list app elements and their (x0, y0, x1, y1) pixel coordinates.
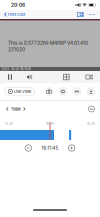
staticText: 16:30 (87, 122, 95, 126)
button[interactable]: Record (83, 71, 95, 83)
button[interactable]: Layout (61, 71, 72, 83)
staticText: ∞ (89, 106, 93, 112)
staticText: 20:06 (11, 2, 25, 8)
button[interactable]: Front Door (4, 10, 25, 19)
button[interactable]: Today (4, 105, 27, 113)
staticText: 16:11:45 (41, 145, 58, 151)
staticText: 2022-10-20 16:11:45 (1, 67, 31, 71)
button[interactable]: Pause (5, 71, 15, 83)
button[interactable]: More (88, 11, 96, 18)
button[interactable]: Live View (4, 87, 35, 96)
staticText: Today (11, 107, 21, 111)
staticText: Live View (14, 89, 31, 94)
staticText: 16:00 (46, 122, 54, 126)
staticText: 221020 (8, 47, 25, 53)
button[interactable]: Sound (24, 71, 35, 83)
button[interactable]: Zoom in (67, 144, 76, 152)
button[interactable]: Download (86, 87, 95, 96)
button[interactable]: Snapshot (44, 87, 53, 96)
staticText: 15:30 (5, 122, 13, 126)
button[interactable]: Zoom out (24, 144, 32, 152)
button[interactable]: Settings (58, 87, 67, 96)
button[interactable]: Picture in picture (76, 11, 84, 18)
staticText: Front Door (8, 12, 25, 17)
staticText: This is DS7732NI-M4I16P V4.61.410 (8, 40, 88, 46)
button[interactable]: Mute (72, 87, 81, 96)
button[interactable]: Filter (87, 105, 95, 113)
